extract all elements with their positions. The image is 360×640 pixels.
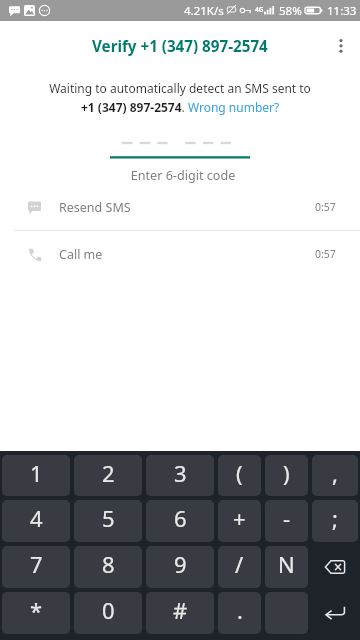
button[interactable]: * xyxy=(2,592,70,634)
staticText: ; xyxy=(332,503,338,533)
button[interactable]: N xyxy=(265,546,308,588)
button[interactable]: Backspace xyxy=(312,546,358,588)
button[interactable]: More options xyxy=(316,21,360,65)
button[interactable]: Enter xyxy=(312,592,358,634)
button[interactable]: 3 xyxy=(146,455,214,496)
staticText: ) xyxy=(283,458,290,488)
staticText: 9 xyxy=(174,549,187,579)
staticText: # xyxy=(173,595,188,625)
staticText: * xyxy=(30,595,43,625)
staticText: 0:57 xyxy=(315,247,336,261)
staticText: 0:57 xyxy=(315,200,336,214)
button[interactable]: , xyxy=(312,455,358,496)
staticText: 1 xyxy=(30,458,43,488)
button[interactable]: ) xyxy=(265,455,308,496)
staticText: . xyxy=(237,595,243,625)
button[interactable]: Resend SMS xyxy=(0,184,360,230)
staticText: 8 xyxy=(102,549,115,579)
button[interactable]: 5 xyxy=(74,500,142,542)
button[interactable]: / xyxy=(218,546,261,588)
staticText: 4 xyxy=(30,503,43,533)
button[interactable]: - xyxy=(265,500,308,542)
staticText: 58% xyxy=(279,3,302,19)
button[interactable]: ( xyxy=(218,455,261,496)
staticText: 5 xyxy=(102,503,115,533)
staticText: , xyxy=(332,458,338,488)
button[interactable]: 0 xyxy=(74,592,142,634)
staticText: Call me xyxy=(59,246,103,263)
staticText: Verify +1 (347) 897-2574 xyxy=(92,36,268,57)
staticText: - xyxy=(283,503,291,533)
staticText: ( xyxy=(236,458,243,488)
staticText: +1 (347) 897-2574. Wrong number? xyxy=(81,99,280,115)
staticText: N xyxy=(278,549,295,579)
staticText: Enter 6-digit code xyxy=(3,167,360,184)
staticText: 11:33 xyxy=(327,3,357,19)
staticText: Waiting to automatically detect an SMS s… xyxy=(0,80,360,96)
button[interactable]: 4 xyxy=(2,500,70,542)
button[interactable]: . xyxy=(218,592,261,634)
button[interactable]: ; xyxy=(312,500,358,542)
staticText: 0 xyxy=(102,595,115,625)
staticText: 2 xyxy=(102,458,115,488)
button[interactable]: 7 xyxy=(2,546,70,588)
button[interactable]: Call me xyxy=(0,231,360,277)
button[interactable]: + xyxy=(218,500,261,542)
staticText: 4.21K/s xyxy=(184,3,224,19)
staticText: / xyxy=(235,549,244,579)
staticText: + xyxy=(233,503,246,533)
button[interactable]: # xyxy=(146,592,214,634)
staticText: 4G xyxy=(255,5,264,14)
staticText: 6 xyxy=(174,503,187,533)
button[interactable]: 8 xyxy=(74,546,142,588)
button[interactable]: 6 xyxy=(146,500,214,542)
staticText: 7 xyxy=(30,549,43,579)
button[interactable]: 2 xyxy=(74,455,142,496)
button[interactable]: 1 xyxy=(2,455,70,496)
staticText: Resend SMS xyxy=(59,199,131,216)
button[interactable]: 9 xyxy=(146,546,214,588)
staticText: 3 xyxy=(174,458,187,488)
